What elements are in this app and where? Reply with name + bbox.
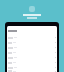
button[interactable] <box>8 45 56 50</box>
button[interactable] <box>8 55 56 60</box>
button[interactable] <box>8 65 56 70</box>
button[interactable] <box>8 70 56 72</box>
button[interactable] <box>8 35 56 40</box>
button[interactable] <box>8 50 56 55</box>
button[interactable] <box>8 60 56 65</box>
button[interactable]: App logo <box>29 6 35 12</box>
button[interactable] <box>8 40 56 45</box>
